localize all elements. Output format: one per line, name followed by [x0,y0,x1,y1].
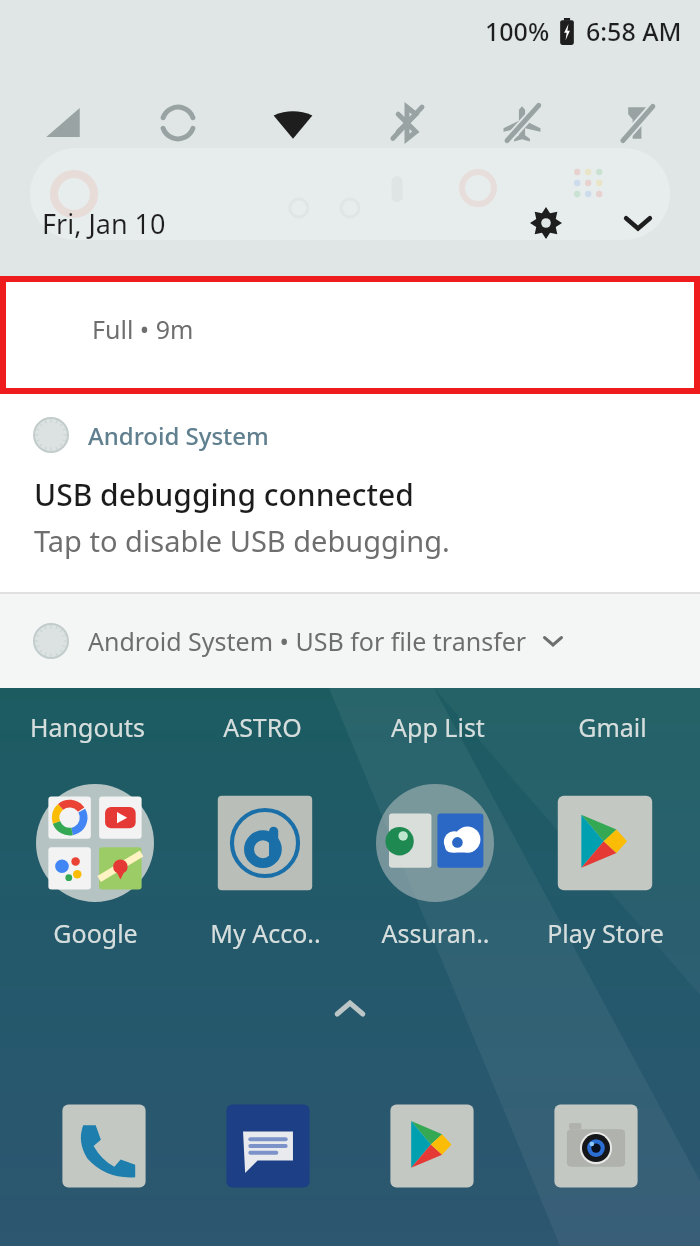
staticText: Fri, Jan 10 [42,205,166,242]
button[interactable]: My Acco.. [190,784,340,950]
button[interactable]: Full • 9m [0,276,700,394]
button[interactable]: Android System • USB for file transfer [0,594,700,688]
button[interactable]: Play Store [530,784,680,950]
staticText: 100% [485,14,550,48]
staticText: My Acco.. [210,916,321,950]
button[interactable]: Google [20,784,170,950]
button[interactable]: Mobile data [34,94,92,152]
button[interactable]: Wi-Fi [264,94,322,152]
button[interactable]: Camera [536,1086,656,1206]
button[interactable]: Phone [44,1086,164,1206]
staticText: 6:58 AM [586,14,682,48]
staticText: ASTRO [223,710,302,744]
button[interactable]: Settings [518,195,574,251]
staticText: USB debugging connected [34,474,414,515]
staticText: App List [391,710,485,744]
staticText: Play Store [547,916,664,950]
staticText: Tap to disable USB debugging. [34,521,450,560]
button[interactable]: Flashlight off [608,94,666,152]
staticText: Android System [88,419,269,452]
button[interactable]: Auto rotate [149,94,207,152]
button[interactable]: Open app drawer [320,978,380,1038]
staticText: Gmail [578,710,647,744]
staticText: Assuran.. [381,916,490,950]
staticText: Full • 9m [92,312,194,346]
staticText: Android System • USB for file transfer [88,624,527,658]
staticText: Hangouts [30,710,145,744]
button[interactable]: Play Store [372,1086,492,1206]
button[interactable]: Messages [208,1086,328,1206]
staticText: Google [53,916,138,950]
button[interactable]: Bluetooth off [378,94,436,152]
button[interactable]: Android System [0,394,700,592]
button[interactable]: Airplane mode off [493,94,551,152]
button[interactable]: Assuran.. [360,784,510,950]
button[interactable]: Expand quick settings [610,195,666,251]
